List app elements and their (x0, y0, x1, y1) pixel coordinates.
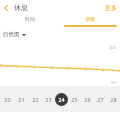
button[interactable]: 26 (81, 86, 94, 112)
staticText: 休息 (14, 3, 28, 12)
button[interactable]: 自然图 (3, 31, 26, 38)
button[interactable]: 时间 (0, 15, 60, 28)
button[interactable]: 22 (28, 86, 42, 112)
staticText: 27 (97, 96, 104, 103)
button[interactable]: 27 (94, 86, 107, 112)
staticText: 50 (111, 80, 116, 85)
staticText: 100 (109, 45, 116, 50)
staticText: 自然图 (3, 31, 20, 38)
button[interactable]: 20 (0, 86, 14, 112)
staticText: 23 (45, 96, 52, 103)
staticText: 25 (71, 96, 78, 103)
button[interactable]: 24 (55, 86, 68, 112)
button[interactable]: 更多 (105, 4, 117, 12)
staticText: 20 (4, 96, 11, 103)
button[interactable]: 28 (107, 86, 120, 112)
staticText: 时间 (25, 16, 35, 22)
staticText: 24 (58, 96, 65, 103)
staticText: 22 (32, 96, 39, 103)
button[interactable]: 23 (42, 86, 55, 112)
staticText: 21 (18, 96, 25, 103)
staticText: 质量 (85, 16, 95, 22)
button[interactable]: 21 (14, 86, 28, 112)
button[interactable]: Back (0, 2, 12, 14)
staticText: 28 (110, 96, 117, 103)
staticText: 26 (84, 96, 91, 103)
button[interactable]: 质量 (60, 15, 120, 28)
button[interactable]: 25 (68, 86, 81, 112)
